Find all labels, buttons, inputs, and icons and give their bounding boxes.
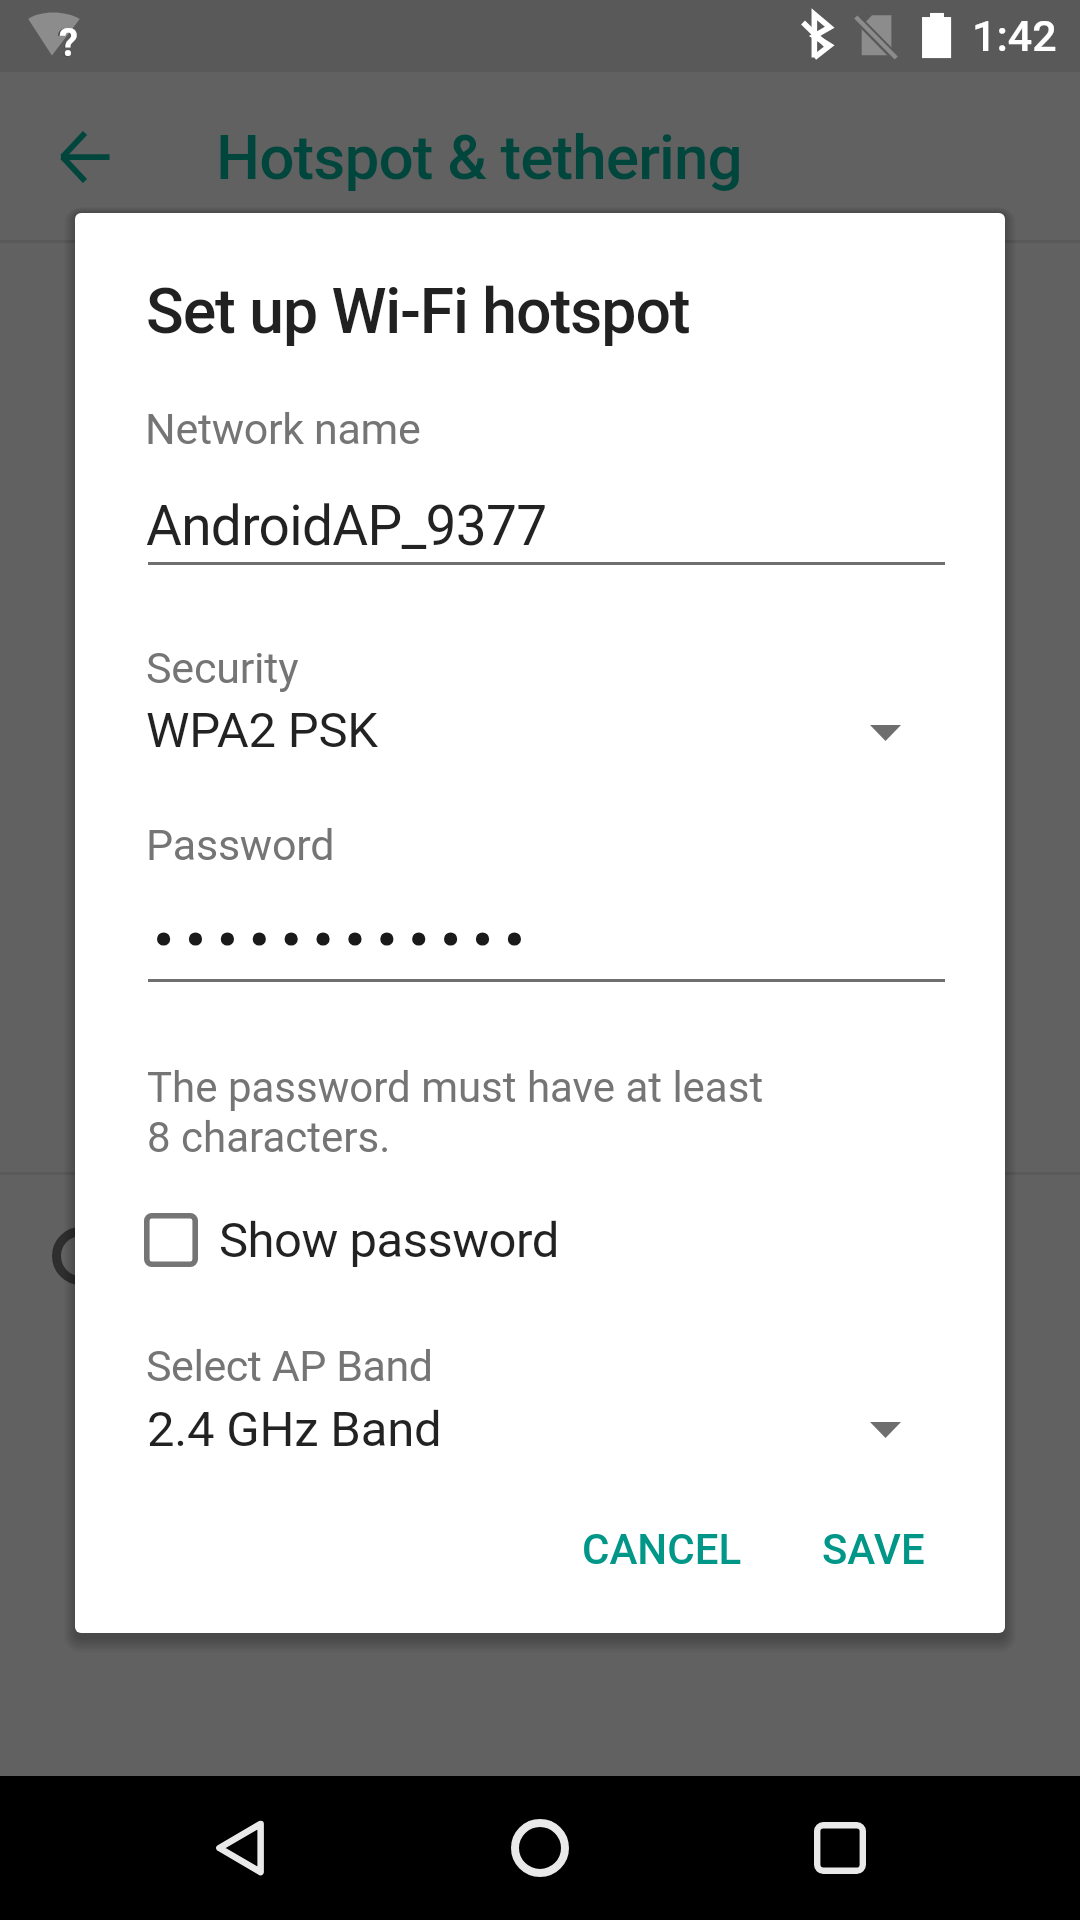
button[interactable] bbox=[125, 1188, 665, 1298]
staticText: ? bbox=[59, 21, 78, 66]
staticText: 2.4 GHz Band bbox=[147, 1401, 442, 1458]
staticText: Show password bbox=[219, 1212, 559, 1269]
button[interactable]: Navigate up bbox=[24, 96, 144, 216]
staticText: AndroidAP_9377 bbox=[146, 494, 547, 558]
button[interactable] bbox=[793, 1491, 943, 1599]
staticText: SAVE bbox=[822, 1525, 925, 1574]
button[interactable]: Back bbox=[150, 1776, 330, 1920]
staticText: 1:42 bbox=[972, 11, 1057, 61]
button[interactable] bbox=[555, 1491, 761, 1599]
staticText: CANCEL bbox=[582, 1525, 742, 1574]
staticText: WPA2 PSK bbox=[146, 702, 378, 759]
staticText: The password must have at least 8 charac… bbox=[147, 1063, 764, 1162]
staticText: Network name bbox=[145, 404, 421, 454]
button[interactable]: Recent apps bbox=[750, 1776, 930, 1920]
staticText: Hotspot & tethering bbox=[216, 121, 742, 194]
staticText: Security bbox=[146, 643, 299, 693]
staticText: Password bbox=[146, 820, 335, 870]
staticText: Set up Wi-Fi hotspot bbox=[146, 275, 690, 348]
button[interactable]: Home bbox=[450, 1776, 630, 1920]
staticText: ? bbox=[57, 19, 78, 67]
staticText: Select AP Band bbox=[146, 1341, 433, 1391]
